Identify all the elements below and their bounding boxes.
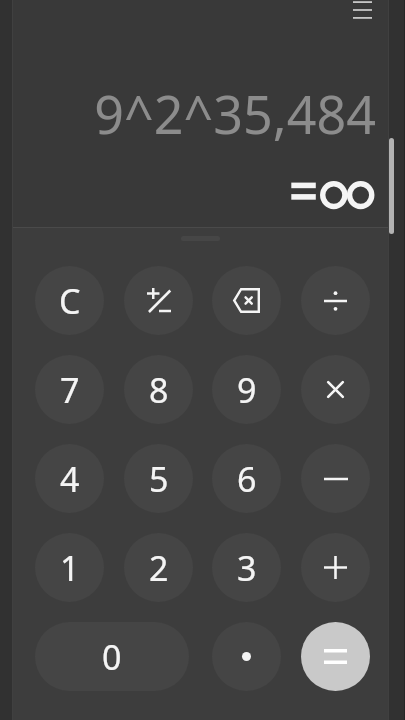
button[interactable]: Multiply [301,355,370,424]
button[interactable]: Plus minus [124,266,193,335]
button[interactable]: Plus [301,533,370,602]
staticText: 6 [237,456,257,502]
staticText: 1 [60,545,80,591]
staticText: 7 [60,367,80,413]
button[interactable]: 5 [124,444,193,513]
staticText: C [59,278,81,324]
button[interactable]: Minus [301,444,370,513]
button[interactable]: 2 [124,533,193,602]
staticText: 8 [149,367,169,413]
staticText: 3 [237,545,257,591]
button[interactable]: 0 [35,622,189,691]
button[interactable]: Divide [301,266,370,335]
button[interactable]: 4 [35,444,104,513]
staticText: 0 [102,634,122,680]
staticText: 9 [237,367,257,413]
button[interactable]: Decimal point [212,622,281,691]
button[interactable]: 1 [35,533,104,602]
button[interactable]: Backspace [212,266,281,335]
button[interactable]: 3 [212,533,281,602]
staticText: 5 [149,456,169,502]
button[interactable]: 6 [212,444,281,513]
staticText: 4 [60,456,80,502]
button[interactable]: 9 [212,355,281,424]
button[interactable]: Menu [346,0,378,26]
button[interactable]: Equals [301,622,370,691]
button[interactable]: Clear [35,266,104,335]
staticText: 9^2^35,484 [13,78,376,149]
button[interactable]: 8 [124,355,193,424]
button[interactable]: 7 [35,355,104,424]
staticText: 2 [149,545,169,591]
